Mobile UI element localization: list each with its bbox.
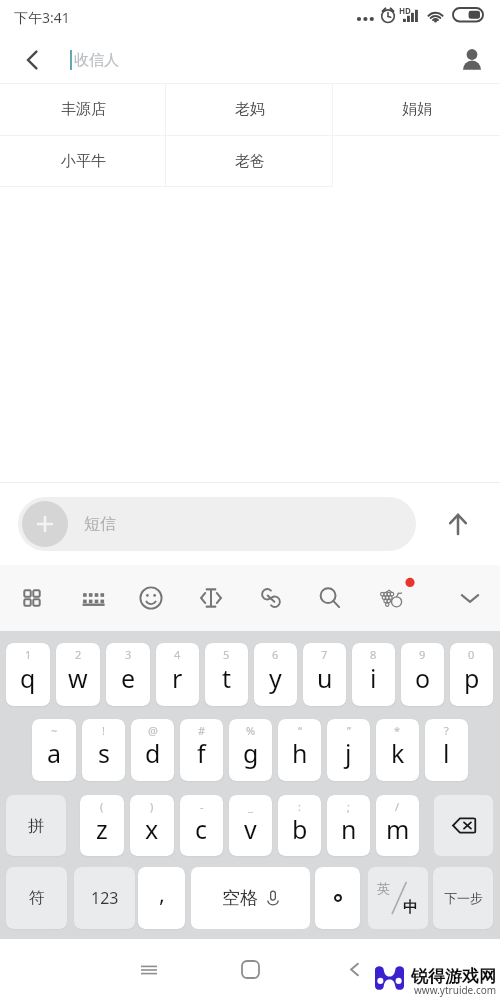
button[interactable]: Recents xyxy=(125,939,173,1000)
button[interactable]: 4 xyxy=(156,643,199,706)
button[interactable]: Back xyxy=(330,939,378,1000)
staticText: y xyxy=(269,661,282,695)
staticText: 小平牛 xyxy=(61,152,106,171)
button[interactable]: 老妈 xyxy=(166,84,333,135)
staticText: s xyxy=(98,736,110,770)
button[interactable]: 6 xyxy=(254,643,297,706)
staticText: w xyxy=(68,661,88,695)
staticText: 下一步 xyxy=(444,890,483,906)
staticText: HD xyxy=(399,5,411,16)
staticText: - xyxy=(200,799,204,814)
staticText: j xyxy=(345,736,352,770)
button[interactable]: # xyxy=(180,719,223,781)
staticText: ( xyxy=(100,799,104,814)
button[interactable]: Search xyxy=(306,574,354,622)
staticText: * xyxy=(394,723,401,738)
button[interactable]: % xyxy=(229,719,272,781)
button[interactable]: * xyxy=(376,719,419,781)
button[interactable]: Period xyxy=(315,867,360,929)
button[interactable]: 空格 xyxy=(191,867,310,929)
staticText: , xyxy=(159,878,165,908)
staticText: e xyxy=(121,661,136,695)
button[interactable]: Emoji xyxy=(127,574,175,622)
button[interactable]: Apps xyxy=(8,574,56,622)
staticText: 7 xyxy=(321,647,328,662)
button[interactable]: 9 xyxy=(401,643,444,706)
button[interactable]: _ xyxy=(229,795,272,856)
button[interactable]: Stickers xyxy=(368,574,416,622)
staticText: b xyxy=(292,812,308,846)
staticText: # xyxy=(198,723,206,738)
staticText: 中 xyxy=(403,898,418,917)
staticText: : xyxy=(298,799,301,814)
button[interactable]: Text xyxy=(187,574,235,622)
button[interactable]: 0 xyxy=(450,643,493,706)
staticText: l xyxy=(443,736,450,770)
button[interactable]: Send xyxy=(416,483,500,565)
staticText: 英 xyxy=(377,880,390,896)
button[interactable]: 娟娟 xyxy=(333,84,500,135)
staticText: ) xyxy=(150,799,154,814)
button[interactable]: - xyxy=(180,795,223,856)
button[interactable]: 下一步 xyxy=(433,867,493,929)
button[interactable]: 拼 xyxy=(6,795,66,856)
button[interactable]: Keypad xyxy=(67,574,115,622)
button[interactable]: ~ xyxy=(32,719,76,781)
button[interactable]: “ xyxy=(278,719,321,781)
staticText: ! xyxy=(102,723,105,738)
staticText: 锐得游戏网 xyxy=(411,966,496,987)
button[interactable]: / xyxy=(376,795,419,856)
button[interactable]: ( xyxy=(80,795,124,856)
staticText: o xyxy=(415,661,431,695)
button[interactable]: Home xyxy=(226,939,274,1000)
staticText: 4 xyxy=(174,647,181,662)
button[interactable]: 老爸 xyxy=(166,136,333,187)
button[interactable]: 123 xyxy=(74,867,135,929)
button[interactable]: Backspace xyxy=(434,795,493,856)
staticText: v xyxy=(244,812,257,846)
button[interactable]: ) xyxy=(130,795,174,856)
staticText: t xyxy=(222,661,232,695)
button[interactable]: 3 xyxy=(106,643,150,706)
button[interactable]: Contacts xyxy=(444,36,500,84)
staticText: 短信 xyxy=(84,514,116,534)
button[interactable]: 丰源店 xyxy=(0,84,166,135)
button[interactable]: : xyxy=(278,795,321,856)
button[interactable]: Attach xyxy=(247,574,295,622)
staticText: / xyxy=(395,799,400,814)
button[interactable]: ; xyxy=(327,795,370,856)
button[interactable]: Back xyxy=(0,36,64,84)
staticText: 8 xyxy=(370,647,377,662)
staticText: 拼 xyxy=(28,816,44,836)
staticText: ~ xyxy=(51,723,58,738)
staticText: 3 xyxy=(125,647,132,662)
button[interactable]: Collapse xyxy=(446,574,494,622)
staticText: d xyxy=(145,736,161,770)
button[interactable]: 1 xyxy=(6,643,50,706)
button[interactable]: Comma xyxy=(138,867,185,929)
button[interactable]: 8 xyxy=(352,643,395,706)
staticText: 老妈 xyxy=(235,100,265,119)
button[interactable]: 7 xyxy=(303,643,346,706)
button[interactable]: @ xyxy=(131,719,174,781)
button[interactable]: 短信 xyxy=(18,497,416,551)
button[interactable]: 英 xyxy=(368,867,428,929)
button[interactable]: ” xyxy=(327,719,370,781)
staticText: 5 xyxy=(223,647,230,662)
staticText: ; xyxy=(347,799,350,814)
button[interactable]: 小平牛 xyxy=(0,136,166,187)
staticText: 0 xyxy=(468,647,475,662)
staticText: ? xyxy=(444,723,449,738)
button[interactable]: 5 xyxy=(205,643,248,706)
staticText: 老爸 xyxy=(235,152,265,171)
button[interactable]: 符 xyxy=(6,867,67,929)
staticText: n xyxy=(341,812,357,846)
button[interactable]: ? xyxy=(425,719,468,781)
staticText: k xyxy=(391,736,405,770)
button[interactable]: 2 xyxy=(56,643,100,706)
staticText: 丰源店 xyxy=(61,100,106,119)
staticText: www.ytruide.com xyxy=(414,983,497,997)
staticText: 收信人 xyxy=(74,51,119,70)
button[interactable]: ! xyxy=(82,719,125,781)
staticText: 6 xyxy=(272,647,279,662)
